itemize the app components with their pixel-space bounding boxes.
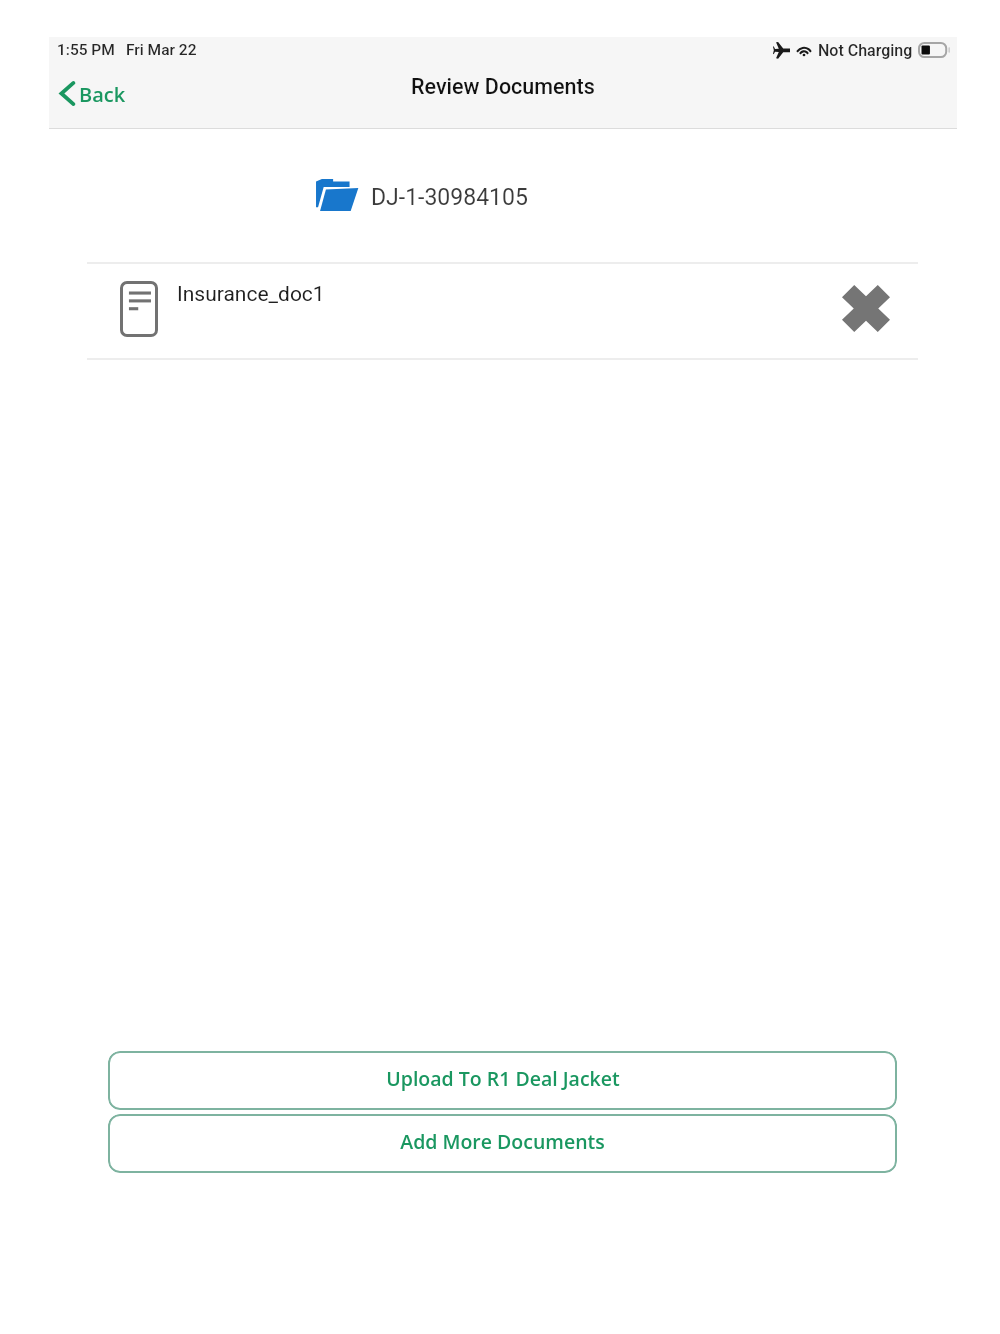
staticText: Insurance_doc1 <box>177 282 325 307</box>
staticText: Back <box>79 81 126 108</box>
staticText: DJ-1-30984105 <box>371 184 528 211</box>
staticText: Not Charging <box>818 41 913 60</box>
button[interactable]: Add More Documents <box>108 1114 897 1173</box>
button[interactable]: Remove document <box>832 274 900 342</box>
staticText: Add More Documents <box>400 1128 605 1155</box>
staticText: Upload To R1 Deal Jacket <box>386 1065 620 1092</box>
staticText: Fri Mar 22 <box>126 41 197 59</box>
button[interactable]: Back <box>49 70 138 117</box>
button[interactable]: Upload To R1 Deal Jacket <box>108 1051 897 1110</box>
staticText: 1:55 PM <box>57 41 115 59</box>
staticText: Review Documents <box>411 74 595 99</box>
button[interactable]: Insurance_doc1 <box>87 264 918 358</box>
